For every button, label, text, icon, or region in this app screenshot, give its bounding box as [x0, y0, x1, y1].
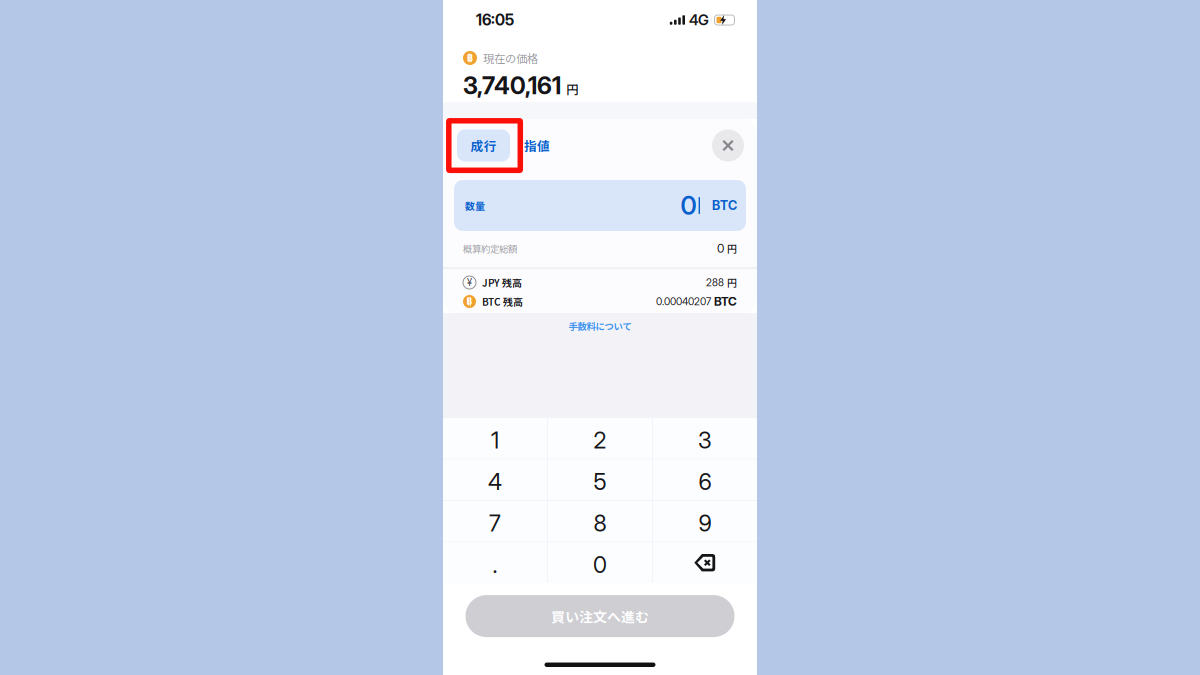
staticText: 3,740,161 [463, 71, 561, 100]
staticText: 買い注文へ進む [551, 606, 649, 626]
button[interactable]: . [443, 542, 547, 583]
button[interactable]: 6 [653, 459, 757, 500]
staticText: 6 [698, 468, 711, 495]
staticText: 現在の価格 [483, 50, 538, 66]
button[interactable]: 5 [548, 459, 652, 500]
staticText: ¥ [467, 277, 472, 288]
staticText: 概算約定総額 [463, 242, 517, 255]
button[interactable] [653, 542, 757, 583]
staticText: B [467, 52, 473, 63]
staticText: 1 [491, 427, 499, 454]
staticText: 7 [489, 510, 501, 537]
staticText: 2 [593, 427, 606, 454]
staticText: BTC [712, 198, 737, 213]
button[interactable]: 2 [548, 418, 652, 459]
staticText: 0 [681, 190, 697, 221]
button[interactable]: 4 [443, 459, 547, 500]
staticText: 成行 [470, 136, 496, 155]
button[interactable]: Close [712, 129, 744, 161]
staticText: BTC 残高 [482, 294, 523, 309]
button[interactable]: 3 [653, 418, 757, 459]
staticText: 8 [593, 510, 606, 537]
staticText: 指値 [524, 136, 550, 155]
staticText: 16:05 [476, 11, 514, 29]
staticText: 288 [706, 276, 724, 289]
staticText: 円 [727, 241, 737, 256]
staticText: . [493, 551, 498, 578]
staticText: 0.00040207 [656, 295, 711, 308]
button[interactable]: 手数料について [443, 313, 757, 339]
button[interactable]: 9 [653, 501, 757, 542]
button[interactable]: 買い注文へ進む [465, 595, 734, 637]
staticText: 円 [727, 275, 737, 290]
staticText: 4G [689, 11, 709, 29]
button[interactable]: 8 [548, 501, 652, 542]
staticText: 3 [698, 427, 712, 454]
staticText: 円 [566, 80, 579, 98]
staticText: JPY 残高 [482, 275, 522, 290]
staticText: 5 [593, 468, 606, 495]
staticText: 4 [488, 468, 502, 495]
staticText: BTC [714, 294, 737, 309]
button[interactable]: 7 [443, 501, 547, 542]
button[interactable]: 成行 [457, 129, 510, 161]
button[interactable]: 指値 [510, 129, 560, 161]
staticText: 数量 [465, 198, 485, 213]
staticText: 0 [593, 551, 607, 578]
button[interactable]: 1 [443, 418, 547, 459]
staticText: 手数料について [568, 319, 631, 333]
button[interactable]: 0 [548, 542, 652, 583]
staticText: 0 [717, 241, 724, 256]
staticText: 9 [698, 510, 711, 537]
staticText: B [466, 296, 472, 307]
